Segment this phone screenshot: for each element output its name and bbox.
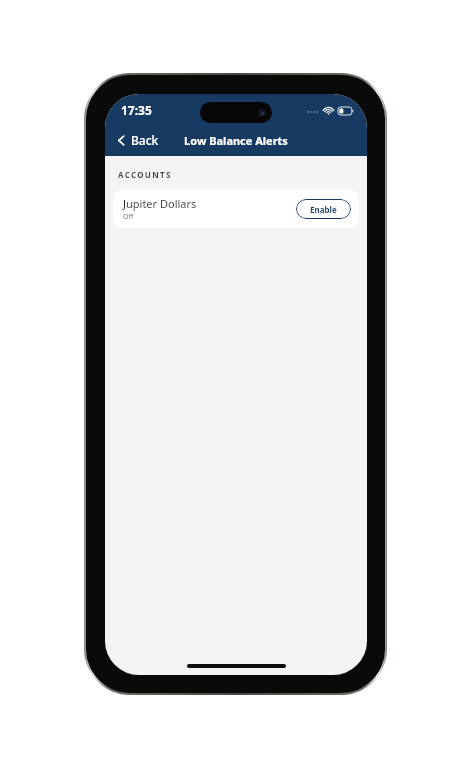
staticText: Back [131, 132, 159, 148]
staticText: Low Balance Alerts [184, 133, 288, 148]
staticText: Enable [310, 204, 337, 215]
staticText: Off [123, 212, 134, 222]
staticText: ACCOUNTS [118, 169, 172, 180]
staticText: Jupiter Dollars [123, 196, 197, 211]
button[interactable]: Back [112, 128, 163, 152]
button[interactable]: Enable [296, 199, 351, 219]
staticText: 17:35 [121, 102, 152, 118]
button[interactable]: Jupiter Dollars [113, 189, 359, 228]
